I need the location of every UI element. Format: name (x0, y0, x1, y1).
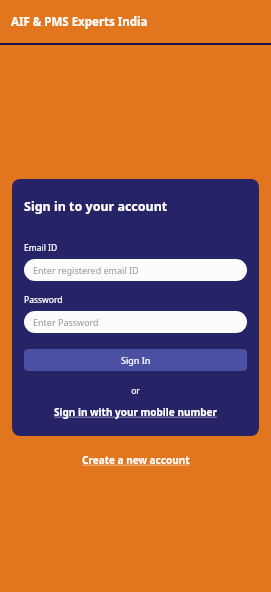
staticText: Enter Password (33, 316, 99, 328)
staticText: Sign in with your mobile number (54, 405, 217, 419)
staticText: Sign in to your account (24, 198, 168, 215)
button[interactable]: Sign in with your mobile number (24, 405, 247, 419)
staticText: Email ID (24, 242, 58, 254)
staticText: Create a new account (82, 453, 190, 467)
staticText: or (24, 385, 247, 397)
button[interactable]: Create a new account (0, 453, 271, 467)
staticText: AIF & PMS Experts India (11, 14, 148, 30)
button[interactable]: Email ID (24, 259, 247, 281)
button[interactable]: Password (24, 311, 247, 333)
button[interactable]: Sign In (24, 349, 247, 371)
staticText: Password (24, 294, 63, 306)
staticText: Sign In (121, 354, 151, 366)
staticText: Enter registered email ID (33, 264, 139, 276)
